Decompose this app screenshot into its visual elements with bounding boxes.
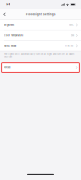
staticText: Brightness (4, 24, 14, 26)
button[interactable]: Color Temperature (0, 30, 81, 40)
staticText: Color Temperature (4, 34, 23, 37)
staticText: Forced (4, 66, 10, 69)
staticText: Select Mode (4, 45, 16, 47)
staticText: The lights will automatically turn on at… (4, 53, 74, 58)
staticText: 100% (68, 24, 73, 26)
staticText: To Be Set (64, 45, 73, 47)
button[interactable]: Forced (2, 63, 79, 72)
button[interactable]: Back (0, 10, 9, 19)
button[interactable]: Select Mode (0, 41, 81, 51)
button[interactable]: Brightness (0, 20, 81, 30)
staticText: 9:41 (6, 3, 10, 6)
staticText: Floodlight Settings (26, 13, 55, 16)
staticText: Cool (70, 34, 73, 37)
